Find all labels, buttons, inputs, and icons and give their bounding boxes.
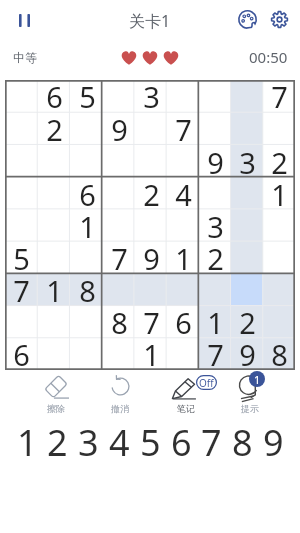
button[interactable] — [103, 338, 135, 370]
button[interactable] — [231, 242, 263, 274]
button[interactable]: 2 — [263, 146, 295, 178]
button[interactable] — [135, 274, 167, 306]
button[interactable]: 1 — [38, 274, 71, 306]
button[interactable]: 9 — [231, 338, 263, 370]
button[interactable] — [103, 80, 135, 113]
button[interactable] — [199, 178, 231, 210]
button[interactable]: 5 — [5, 242, 38, 274]
button[interactable]: 7 — [196, 418, 227, 466]
button[interactable]: 1 — [167, 242, 199, 274]
button[interactable] — [263, 242, 295, 274]
button[interactable]: 7 — [103, 242, 135, 274]
button[interactable] — [5, 113, 38, 146]
button[interactable]: 擦除 — [26, 373, 86, 415]
button[interactable]: 撤消 — [90, 373, 150, 415]
button[interactable] — [231, 80, 263, 113]
button[interactable]: 8 — [227, 418, 258, 466]
button[interactable] — [167, 338, 199, 370]
button[interactable] — [71, 338, 103, 370]
button[interactable]: Theme — [233, 5, 262, 34]
button[interactable]: 5 — [71, 80, 103, 113]
button[interactable]: 3 — [135, 80, 167, 113]
button[interactable] — [167, 146, 199, 178]
staticText: 7 — [207, 335, 224, 367]
button[interactable]: 2 — [42, 418, 73, 466]
button[interactable]: 7 — [263, 80, 295, 113]
button[interactable]: 1 — [263, 178, 295, 210]
staticText: 3 — [207, 207, 224, 239]
button[interactable]: 6 — [5, 338, 38, 370]
button[interactable]: 2 — [199, 242, 231, 274]
button[interactable]: 7 — [199, 338, 231, 370]
button[interactable] — [38, 242, 71, 274]
button[interactable] — [38, 178, 71, 210]
button[interactable] — [38, 210, 71, 242]
button[interactable]: 7 — [167, 113, 199, 146]
button[interactable] — [5, 178, 38, 210]
button[interactable]: 6 — [167, 306, 199, 338]
button[interactable]: 9 — [103, 113, 135, 146]
button[interactable]: 6 — [71, 178, 103, 210]
button[interactable]: 8 — [71, 274, 103, 306]
button[interactable]: 3 — [231, 146, 263, 178]
button[interactable] — [135, 210, 167, 242]
button[interactable]: 9 — [199, 146, 231, 178]
button[interactable] — [5, 306, 38, 338]
button[interactable]: 1 — [220, 373, 280, 415]
button[interactable] — [5, 80, 38, 113]
button[interactable]: 6 — [166, 418, 197, 466]
button[interactable]: 7 — [5, 274, 38, 306]
button[interactable] — [71, 146, 103, 178]
button[interactable]: 4 — [167, 178, 199, 210]
button[interactable] — [71, 113, 103, 146]
button[interactable] — [103, 178, 135, 210]
button[interactable]: 1 — [199, 306, 231, 338]
button[interactable]: 6 — [38, 80, 71, 113]
button[interactable] — [5, 210, 38, 242]
button[interactable] — [199, 113, 231, 146]
button[interactable]: 2 — [135, 178, 167, 210]
button[interactable] — [263, 274, 295, 306]
button[interactable] — [103, 146, 135, 178]
button[interactable] — [71, 306, 103, 338]
button[interactable] — [263, 113, 295, 146]
button[interactable]: 1 — [135, 338, 167, 370]
button[interactable] — [263, 210, 295, 242]
button[interactable] — [38, 306, 71, 338]
button[interactable]: Settings — [265, 5, 294, 34]
button[interactable] — [5, 146, 38, 178]
button[interactable] — [135, 113, 167, 146]
button[interactable]: 4 — [104, 418, 135, 466]
button[interactable] — [103, 274, 135, 306]
button[interactable]: Off — [156, 373, 216, 415]
button[interactable]: 7 — [135, 306, 167, 338]
staticText: 9 — [263, 418, 284, 466]
button[interactable]: 3 — [73, 418, 104, 466]
button[interactable]: 2 — [231, 306, 263, 338]
button[interactable] — [199, 274, 231, 306]
button[interactable] — [167, 210, 199, 242]
button[interactable] — [135, 146, 167, 178]
button[interactable]: Pause — [9, 5, 40, 36]
button[interactable]: 1 — [12, 418, 43, 466]
button[interactable] — [38, 338, 71, 370]
button[interactable] — [38, 146, 71, 178]
button[interactable] — [167, 274, 199, 306]
button[interactable]: 9 — [135, 242, 167, 274]
button[interactable]: 5 — [135, 418, 166, 466]
button[interactable]: 2 — [38, 113, 71, 146]
button[interactable]: 9 — [258, 418, 289, 466]
button[interactable] — [263, 306, 295, 338]
button[interactable] — [103, 210, 135, 242]
button[interactable] — [199, 80, 231, 113]
button[interactable]: 8 — [263, 338, 295, 370]
button[interactable] — [231, 274, 263, 306]
button[interactable]: 1 — [71, 210, 103, 242]
button[interactable]: 3 — [199, 210, 231, 242]
button[interactable]: 8 — [103, 306, 135, 338]
button[interactable] — [71, 242, 103, 274]
button[interactable] — [167, 80, 199, 113]
